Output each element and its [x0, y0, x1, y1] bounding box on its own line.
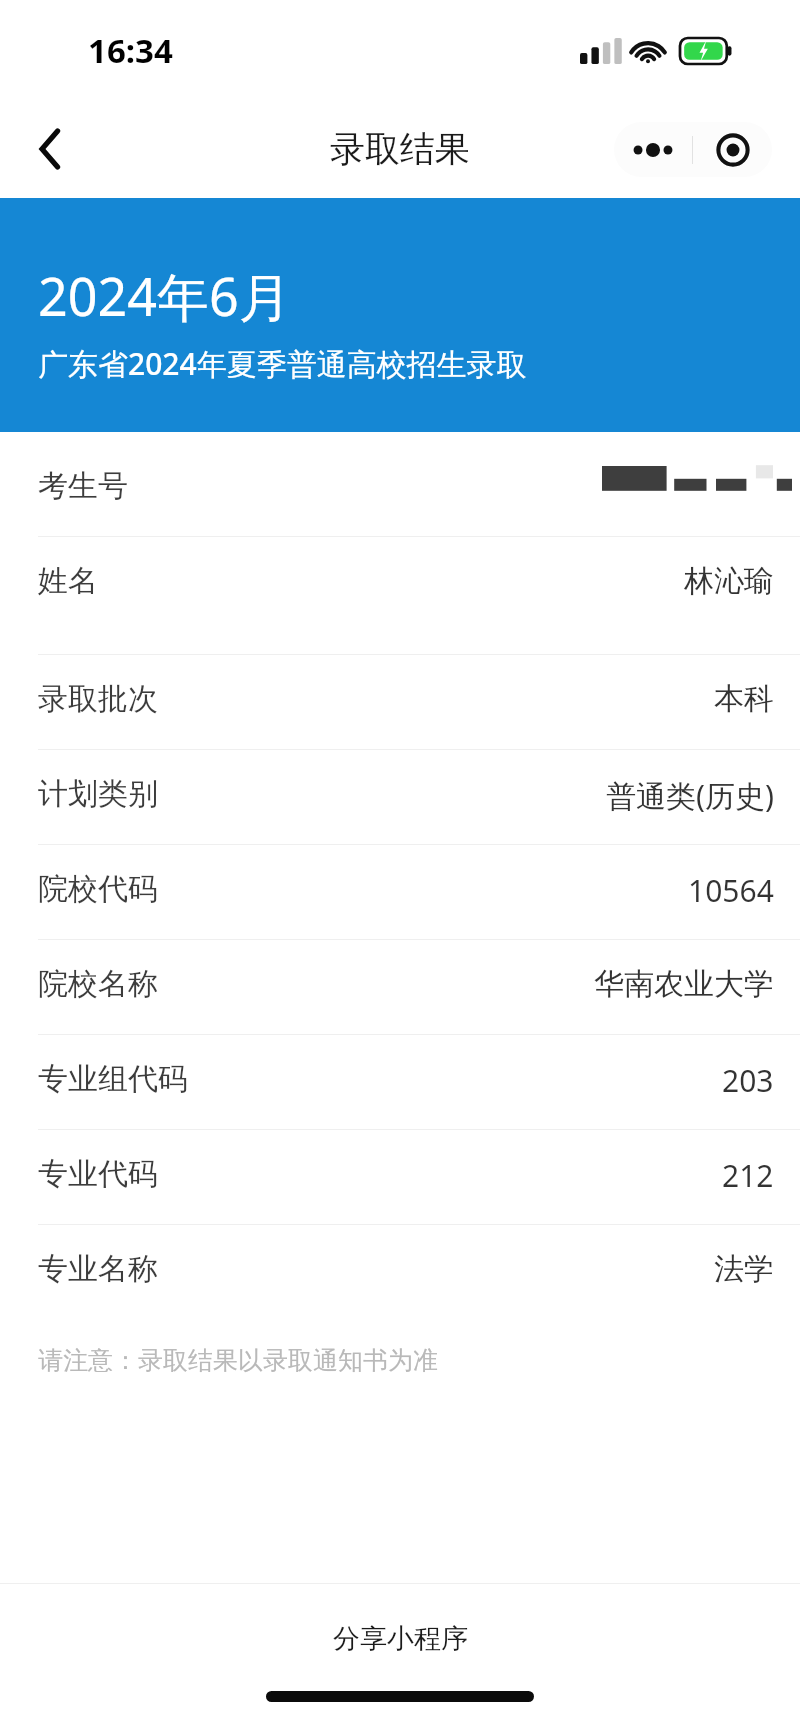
staticText: 专业代码	[38, 1155, 158, 1193]
staticText: 广东省2024年夏季普通高校招生录取	[38, 343, 527, 384]
staticText: 院校名称	[38, 965, 158, 1003]
staticText: 专业组代码	[38, 1060, 188, 1098]
button[interactable]: 姓名	[0, 537, 800, 654]
staticText: 华南农业大学	[594, 965, 774, 1003]
staticText: 普通类(历史)	[606, 775, 774, 816]
staticText: 请注意：录取结果以录取通知书为准	[38, 1345, 438, 1376]
staticText: 专业名称	[38, 1250, 158, 1288]
staticText: 计划类别	[38, 775, 158, 813]
staticText: 考生号	[38, 467, 128, 505]
staticText: 203	[722, 1060, 774, 1101]
button[interactable]: 专业名称	[0, 1225, 800, 1319]
button[interactable]: 考生号	[0, 442, 800, 536]
button[interactable]: 专业代码	[0, 1130, 800, 1224]
button[interactable]: 关闭	[693, 122, 772, 177]
staticText: 16:34	[88, 28, 173, 73]
staticText: 姓名	[38, 562, 98, 600]
button[interactable]: 院校名称	[0, 940, 800, 1034]
staticText: 录取批次	[38, 680, 158, 718]
staticText: 林沁瑜	[684, 562, 774, 600]
staticText: 212	[722, 1155, 774, 1196]
staticText: 录取结果	[330, 127, 470, 171]
button[interactable]: 专业组代码	[0, 1035, 800, 1129]
button[interactable]: 院校代码	[0, 845, 800, 939]
button[interactable]: 计划类别	[0, 750, 800, 844]
staticText: 10564	[688, 870, 774, 911]
staticText: 院校代码	[38, 870, 158, 908]
staticText: 分享小程序	[333, 1622, 468, 1656]
staticText: 法学	[714, 1250, 774, 1288]
staticText: 2024年6月	[38, 260, 291, 331]
staticText: 本科	[714, 680, 774, 718]
button[interactable]: 分享小程序	[0, 1584, 800, 1691]
button[interactable]: 返回	[22, 121, 78, 177]
button[interactable]: 录取批次	[0, 655, 800, 749]
button[interactable]: 更多	[614, 122, 692, 177]
